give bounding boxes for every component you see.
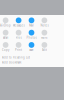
button[interactable]: Safari [0,30,12,39]
button[interactable]: More [38,30,51,39]
staticText: Mail [29,24,34,27]
staticText: Copy [2,48,9,52]
button[interactable]: Photos [25,30,38,39]
staticText: AirDrop [0,24,11,27]
staticText: Messages [13,24,25,27]
staticText: Safari [3,36,9,39]
button[interactable]: Files [12,30,25,39]
button[interactable]: Edit [38,42,51,51]
button[interactable]: Mail [25,17,38,27]
staticText: Print [15,48,22,52]
staticText: Save [29,48,34,52]
staticText: More [41,36,48,39]
button[interactable]: Messages [12,17,25,27]
button[interactable]: AirDrop [0,17,12,27]
staticText: Notes [40,24,48,27]
staticText: Edit [42,48,47,52]
button[interactable]: Add to Reading List [0,55,50,60]
staticText: Photos [26,36,36,39]
staticText: Add Bookmark [2,61,21,64]
button[interactable]: Print [12,42,25,51]
button[interactable]: Add Bookmark [0,60,50,65]
button[interactable]: Notes [38,17,51,27]
staticText: Add to Reading List [2,56,30,59]
button[interactable]: Save [25,42,38,51]
button[interactable]: Copy [0,42,12,51]
staticText: Files [16,36,22,39]
